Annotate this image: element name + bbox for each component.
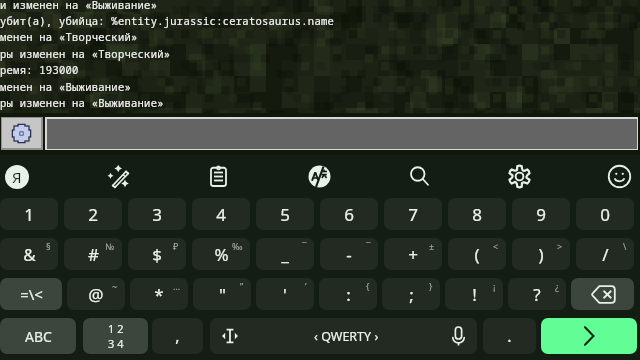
staticText: ры изменен на «Творческий» bbox=[0, 47, 171, 61]
button[interactable]: 6 bbox=[320, 198, 378, 230]
button[interactable]: + bbox=[384, 238, 442, 270]
staticText: ₽ bbox=[173, 240, 179, 252]
button[interactable]: Clipboard bbox=[197, 155, 239, 198]
button[interactable]: _ bbox=[256, 238, 314, 270]
staticText: § bbox=[46, 240, 51, 252]
button[interactable]: Backspace bbox=[571, 278, 634, 310]
button[interactable]: Settings bbox=[498, 155, 540, 198]
button[interactable]: / bbox=[576, 238, 634, 270]
staticText: 3 4 bbox=[108, 336, 124, 351]
button[interactable]: 4 bbox=[192, 198, 250, 230]
button[interactable]: 9 bbox=[512, 198, 570, 230]
button[interactable]: 2 bbox=[64, 198, 122, 230]
button[interactable]: 5 bbox=[256, 198, 314, 230]
staticText: ¡ bbox=[493, 280, 496, 292]
button[interactable]: Emoji bbox=[598, 155, 640, 198]
button[interactable]: 7 bbox=[384, 198, 442, 230]
staticText: { bbox=[366, 280, 370, 292]
staticText: - bbox=[346, 243, 352, 266]
staticText: ’ bbox=[305, 280, 307, 292]
button[interactable]: & bbox=[0, 238, 58, 270]
staticText: … bbox=[173, 280, 181, 292]
button[interactable]: - bbox=[320, 238, 378, 270]
button[interactable]: ABC bbox=[0, 318, 76, 354]
staticText: @ bbox=[88, 283, 104, 306]
staticText: ремя: 193000 bbox=[0, 63, 79, 77]
staticText: 7 bbox=[408, 203, 418, 226]
button[interactable]: # bbox=[64, 238, 122, 270]
staticText: ! bbox=[472, 283, 477, 306]
button[interactable]: ? bbox=[508, 278, 566, 310]
staticText: ( bbox=[474, 243, 480, 266]
button[interactable]: : bbox=[319, 278, 377, 310]
staticText: " bbox=[219, 283, 226, 306]
staticText: ; bbox=[409, 283, 414, 306]
button[interactable]: ; bbox=[382, 278, 440, 310]
staticText: $ bbox=[152, 243, 162, 266]
staticText: % bbox=[214, 243, 229, 266]
staticText: } bbox=[429, 280, 433, 292]
button[interactable]: * bbox=[130, 278, 188, 310]
staticText: менен на «Творческий» bbox=[0, 30, 138, 44]
staticText: 4 bbox=[216, 203, 226, 226]
button[interactable]: , bbox=[152, 318, 203, 354]
staticText: и изменен на «Выживание» bbox=[0, 0, 158, 12]
staticText: ~ bbox=[112, 280, 118, 292]
staticText: + bbox=[408, 243, 418, 266]
staticText: , bbox=[175, 325, 180, 347]
staticText: ‹ QWERTY › bbox=[314, 328, 379, 345]
staticText: ? bbox=[533, 283, 541, 306]
staticText: * bbox=[154, 283, 164, 306]
button[interactable]: @ bbox=[67, 278, 125, 310]
button[interactable]: Translate bbox=[298, 155, 340, 198]
button[interactable]: Send bbox=[541, 318, 637, 354]
button[interactable]: 0 bbox=[576, 198, 634, 230]
staticText: & bbox=[23, 243, 36, 266]
staticText: < bbox=[493, 240, 499, 252]
staticText: # bbox=[88, 243, 99, 266]
button[interactable]: Keyboard settings bbox=[2, 118, 41, 148]
button[interactable]: . bbox=[483, 318, 536, 354]
staticText: : bbox=[346, 283, 351, 306]
staticText: 6 bbox=[344, 203, 354, 226]
staticText: ¯ bbox=[366, 240, 371, 252]
staticText: ABC bbox=[25, 327, 52, 346]
button[interactable]: Smart text bbox=[96, 155, 138, 198]
staticText: > bbox=[557, 240, 563, 252]
button[interactable]: ! bbox=[445, 278, 503, 310]
button[interactable]: 3 bbox=[128, 198, 186, 230]
button[interactable]: 1 bbox=[0, 198, 58, 230]
staticText: № bbox=[105, 240, 115, 252]
button[interactable]: =\< bbox=[0, 278, 62, 310]
staticText: Я bbox=[12, 167, 22, 187]
staticText: 5 bbox=[280, 203, 290, 226]
button[interactable]: $ bbox=[128, 238, 186, 270]
staticText: убит(а), убийца: %entity.jurassic:cerato… bbox=[0, 14, 335, 28]
staticText: 0 bbox=[600, 203, 610, 226]
button[interactable]: Yandex bbox=[0, 155, 38, 198]
staticText: ¯ bbox=[302, 240, 307, 252]
button[interactable]: Search bbox=[398, 155, 440, 198]
staticText: менен на «Выживание» bbox=[0, 80, 131, 94]
button[interactable]: Space bbox=[210, 318, 477, 354]
button[interactable]: Numbers bbox=[83, 318, 148, 354]
staticText: 1 bbox=[24, 203, 34, 226]
staticText: ‰ bbox=[232, 240, 243, 252]
staticText: 2 bbox=[88, 203, 98, 226]
button[interactable]: " bbox=[193, 278, 251, 310]
staticText: 8 bbox=[472, 203, 482, 226]
button[interactable]: ' bbox=[256, 278, 314, 310]
button[interactable]: % bbox=[192, 238, 250, 270]
staticText: _ bbox=[281, 243, 289, 266]
staticText: ” bbox=[240, 280, 244, 292]
staticText: 9 bbox=[536, 203, 546, 226]
button[interactable]: ) bbox=[512, 238, 570, 270]
staticText: ' bbox=[283, 283, 287, 306]
button[interactable]: ( bbox=[448, 238, 506, 270]
button[interactable]: 8 bbox=[448, 198, 506, 230]
staticText: ± bbox=[429, 240, 435, 252]
staticText: 1 2 bbox=[108, 321, 124, 336]
staticText: ) bbox=[538, 243, 544, 266]
staticText: =\< bbox=[20, 284, 43, 304]
